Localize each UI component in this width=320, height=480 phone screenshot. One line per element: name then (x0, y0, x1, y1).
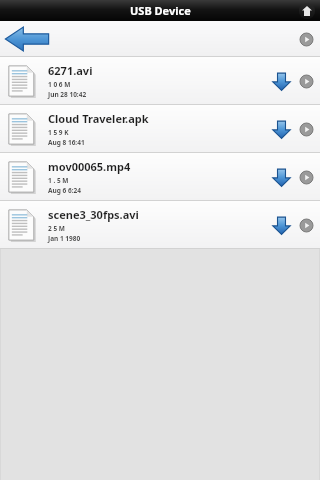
staticText: mov00065.mp4 (48, 159, 131, 174)
staticText: 1 0 6 M (48, 80, 71, 89)
staticText: 1 . 5 M (48, 176, 69, 185)
button[interactable]: Download (268, 164, 294, 190)
button[interactable]: Download (268, 212, 294, 238)
button[interactable]: scene3_30fps.avi (0, 201, 320, 249)
button[interactable]: Download (268, 116, 294, 142)
staticText: 1 5 9 K (48, 128, 69, 137)
button[interactable]: Cloud Traveler.apk (0, 105, 320, 153)
button[interactable]: Back (0, 21, 320, 57)
staticText: Jun 28 10:42 (48, 90, 87, 99)
staticText: USB Device (130, 3, 191, 18)
button[interactable]: Open (296, 215, 316, 235)
button[interactable]: Open (296, 119, 316, 139)
staticText: Aug 6 6:24 (48, 186, 81, 195)
button[interactable]: Home (299, 3, 315, 19)
staticText: Aug 8 16:41 (48, 138, 85, 147)
button[interactable]: Download (268, 68, 294, 94)
button[interactable]: Open (296, 71, 316, 91)
button[interactable]: 6271.avi (0, 57, 320, 105)
button[interactable]: mov00065.mp4 (0, 153, 320, 201)
button[interactable]: Open (296, 167, 316, 187)
staticText: 2 5 M (48, 224, 65, 233)
staticText: scene3_30fps.avi (48, 207, 139, 222)
staticText: 6271.avi (48, 63, 93, 78)
staticText: Cloud Traveler.apk (48, 111, 149, 126)
staticText: Jan 1 1980 (48, 234, 81, 243)
